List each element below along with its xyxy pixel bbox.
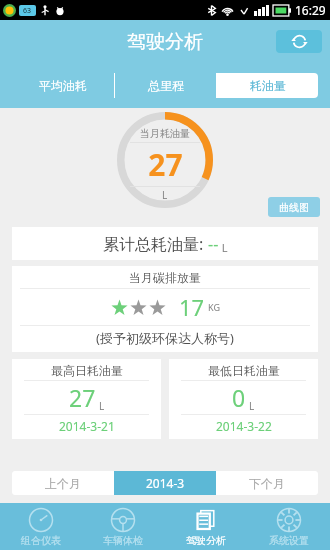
- staticText: 2014-3-21: [59, 418, 115, 434]
- button[interactable]: 曲线图: [268, 197, 320, 217]
- button[interactable]: 组合仪表: [0, 503, 82, 550]
- button[interactable]: 总里程: [115, 73, 216, 98]
- staticText: L: [162, 188, 168, 202]
- staticText: 最低日耗油量: [208, 363, 280, 378]
- staticText: 16:29: [295, 2, 326, 18]
- staticText: 曲线图: [279, 201, 309, 214]
- staticText: 17: [179, 292, 205, 322]
- staticText: 最高日耗油量: [51, 363, 123, 378]
- button[interactable]: Refresh: [276, 30, 322, 53]
- staticText: 系统设置: [269, 534, 309, 547]
- button[interactable]: 最高日耗油量: [12, 359, 161, 439]
- button[interactable]: 车辆体检: [82, 503, 164, 550]
- button[interactable]: 累计总耗油量:: [12, 227, 318, 260]
- button[interactable]: 系统设置: [247, 503, 330, 550]
- staticText: 驾驶分析: [186, 534, 226, 547]
- staticText: 当月耗油量: [140, 127, 190, 140]
- staticText: 耗油量: [250, 78, 286, 93]
- staticText: L: [99, 399, 105, 413]
- button[interactable]: 2014-3: [114, 471, 216, 495]
- staticText: 63: [23, 6, 32, 16]
- staticText: --: [208, 233, 219, 255]
- staticText: 平均油耗: [39, 78, 87, 93]
- button[interactable]: 平均油耗: [12, 73, 114, 98]
- staticText: (授予初级环保达人称号): [96, 329, 234, 347]
- button[interactable]: 当月碳排放量: [12, 266, 318, 352]
- staticText: 车辆体检: [103, 534, 143, 547]
- staticText: 驾驶分析: [127, 30, 203, 54]
- staticText: 当月碳排放量: [129, 270, 201, 285]
- button[interactable]: 最低日耗油量: [169, 359, 318, 439]
- staticText: L: [249, 399, 255, 413]
- staticText: 总里程: [148, 78, 184, 93]
- staticText: 组合仪表: [21, 534, 61, 547]
- staticText: 2014-3-22: [216, 418, 272, 434]
- button[interactable]: 上个月: [12, 471, 114, 495]
- staticText: 2014-3: [146, 475, 185, 491]
- staticText: 27: [148, 144, 183, 185]
- staticText: L: [219, 240, 228, 255]
- button[interactable]: 驾驶分析: [164, 503, 247, 550]
- staticText: 0: [232, 382, 246, 413]
- button[interactable]: 耗油量: [217, 73, 318, 98]
- button[interactable]: 下个月: [216, 471, 318, 495]
- staticText: 下个月: [249, 476, 285, 491]
- staticText: 27: [69, 382, 96, 413]
- staticText: KG: [208, 301, 220, 313]
- staticText: 上个月: [45, 476, 81, 491]
- staticText: 累计总耗油量:: [103, 233, 208, 255]
